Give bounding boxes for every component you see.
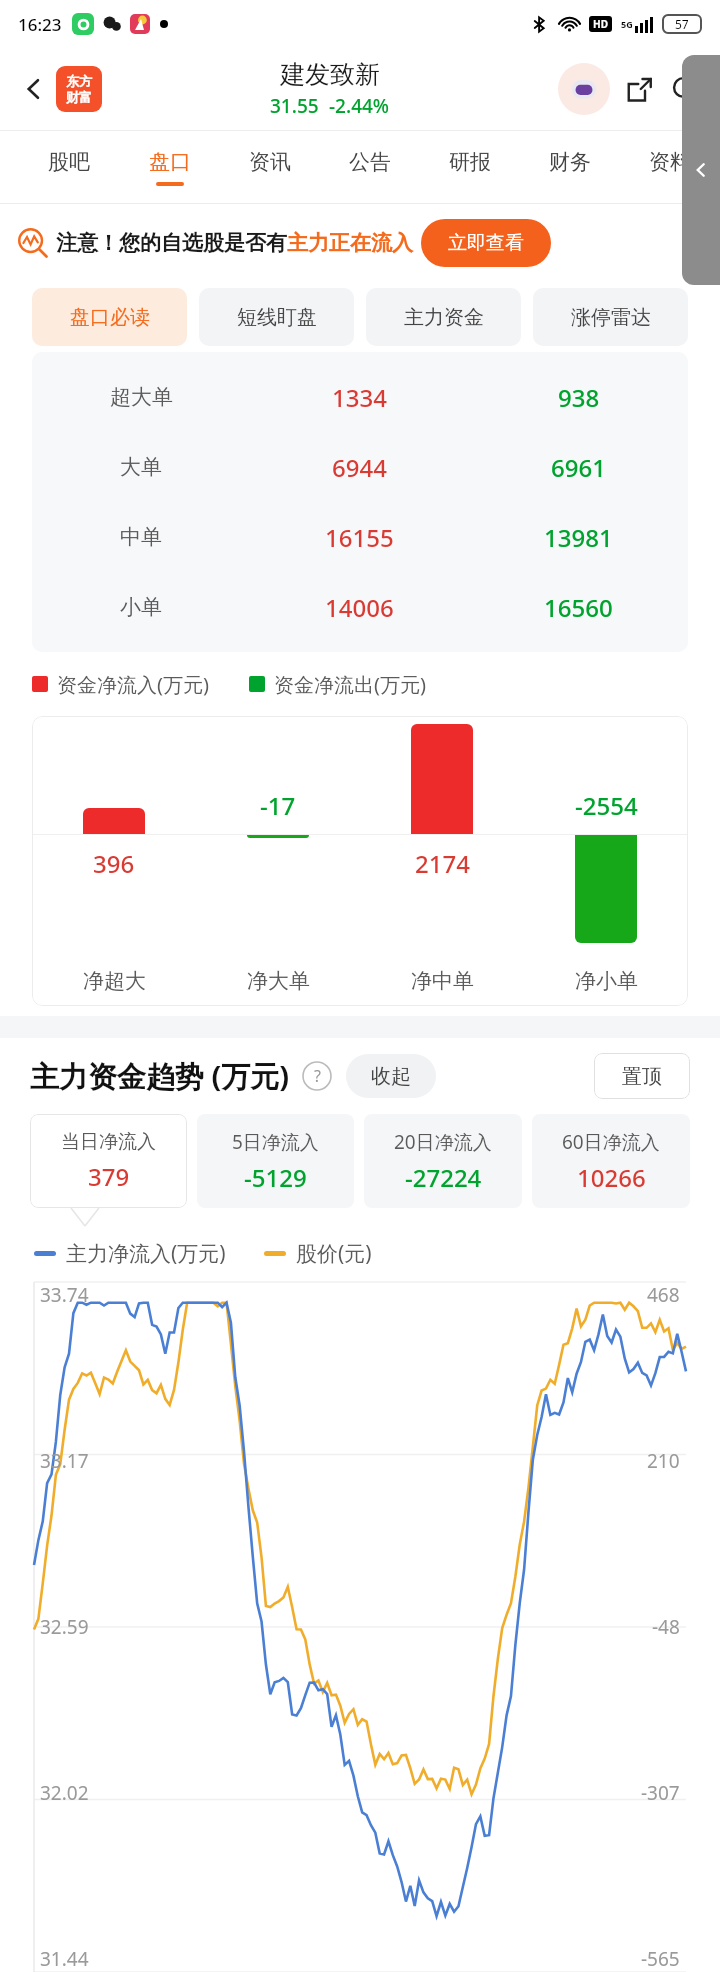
staticText: 468: [647, 1282, 680, 1308]
staticText: 210: [647, 1448, 680, 1474]
staticText: 建发致新: [280, 59, 380, 90]
staticText: 股价(元): [296, 1239, 372, 1268]
staticText: 涨停雷达: [571, 305, 651, 330]
staticText: 置顶: [622, 1064, 662, 1089]
staticText: 资金净流入(万元): [57, 671, 209, 698]
button[interactable]: 公告: [320, 131, 420, 203]
button[interactable]: 收起: [346, 1054, 436, 1098]
staticText: ?: [314, 1065, 321, 1087]
button[interactable]: 当日净流入: [30, 1114, 187, 1208]
staticText: 31.55: [270, 93, 319, 119]
staticText: 大单: [120, 454, 162, 480]
button[interactable]: Search: [662, 66, 708, 112]
button[interactable]: 盘口: [119, 131, 220, 203]
staticText: 1334: [332, 381, 387, 414]
button[interactable]: 置顶: [594, 1053, 690, 1099]
staticText: 主力净流入(万元): [66, 1239, 226, 1268]
staticText: 60日净流入: [562, 1129, 660, 1155]
staticText: 资料: [649, 149, 691, 175]
staticText: 10266: [577, 1161, 646, 1194]
staticText: 财务: [549, 149, 591, 175]
button[interactable]: 资讯: [220, 131, 320, 203]
staticText: 16155: [325, 521, 394, 554]
staticText: 净小单: [575, 968, 638, 994]
staticText: -27224: [405, 1161, 482, 1194]
staticText: 股吧: [48, 149, 90, 175]
staticText: 57: [675, 16, 689, 32]
staticText: 5日净流入: [232, 1129, 319, 1155]
staticText: 16:23: [18, 13, 62, 36]
staticText: 盘口必读: [70, 305, 150, 330]
button[interactable]: -17: [196, 716, 360, 1006]
button[interactable]: 资料: [620, 131, 720, 203]
staticText: 超大单: [110, 384, 173, 410]
staticText: -5129: [244, 1161, 307, 1194]
staticText: 主力正在流入: [287, 230, 413, 256]
button[interactable]: Share: [616, 66, 662, 112]
staticText: 净超大: [83, 968, 146, 994]
button[interactable]: 涨停雷达: [533, 288, 688, 346]
staticText: 6961: [551, 451, 606, 484]
button[interactable]: Assistant: [558, 63, 610, 115]
button[interactable]: 5日净流入: [197, 1114, 354, 1208]
staticText: 5G: [621, 18, 633, 30]
button[interactable]: 研报: [420, 131, 520, 203]
staticText: 研报: [449, 149, 491, 175]
staticText: 2174: [415, 847, 470, 880]
staticText: 32.59: [40, 1614, 89, 1640]
staticText: -17: [260, 789, 296, 822]
staticText: 小单: [120, 594, 162, 620]
staticText: -48: [652, 1614, 680, 1640]
staticText: 净大单: [247, 968, 310, 994]
staticText: -307: [641, 1780, 680, 1806]
staticText: 当日净流入: [61, 1130, 156, 1154]
staticText: 立即查看: [448, 231, 524, 255]
button[interactable]: 396: [32, 716, 196, 1006]
staticText: 379: [88, 1160, 130, 1193]
staticText: 938: [558, 381, 600, 414]
button[interactable]: 股吧: [18, 131, 119, 203]
staticText: 东方: [66, 73, 92, 89]
staticText: 32.02: [40, 1780, 89, 1806]
staticText: -2554: [575, 789, 638, 822]
staticText: 33.74: [40, 1282, 89, 1308]
staticText: 财富: [66, 89, 92, 105]
button[interactable]: 短线盯盘: [199, 288, 354, 346]
button[interactable]: Back: [12, 67, 56, 111]
staticText: -565: [641, 1946, 680, 1972]
staticText: 公告: [349, 149, 391, 175]
button[interactable]: 2174: [360, 716, 524, 1006]
staticText: 盘口: [149, 149, 191, 175]
staticText: 注意！您的自选股是否有: [56, 230, 287, 256]
staticText: 中单: [120, 524, 162, 550]
staticText: 14006: [325, 591, 394, 624]
staticText: 主力资金: [404, 305, 484, 330]
staticText: 13981: [544, 521, 613, 554]
staticText: 收起: [371, 1064, 411, 1089]
button[interactable]: 60日净流入: [532, 1114, 690, 1208]
staticText: HD: [593, 17, 608, 31]
button[interactable]: 立即查看: [421, 219, 551, 267]
staticText: 16560: [544, 591, 613, 624]
staticText: 主力资金趋势 (万元): [30, 1056, 290, 1096]
staticText: -2.44%: [329, 93, 390, 119]
button[interactable]: 主力资金: [366, 288, 521, 346]
staticText: 31.44: [40, 1946, 89, 1972]
button[interactable]: 20日净流入: [364, 1114, 522, 1208]
staticText: 资讯: [249, 149, 291, 175]
staticText: 资金净流出(万元): [274, 671, 426, 698]
button[interactable]: 财务: [520, 131, 620, 203]
staticText: 20日净流入: [394, 1129, 492, 1155]
staticText: 短线盯盘: [237, 305, 317, 330]
staticText: 净中单: [411, 968, 474, 994]
button[interactable]: Help: [302, 1061, 332, 1091]
button[interactable]: -2554: [524, 716, 688, 1006]
button[interactable]: 盘口必读: [32, 288, 187, 346]
staticText: 396: [93, 847, 135, 880]
staticText: 33.17: [40, 1448, 89, 1474]
button[interactable]: Open side panel: [682, 55, 720, 285]
button[interactable]: East Money: [56, 66, 102, 112]
staticText: 6944: [332, 451, 387, 484]
